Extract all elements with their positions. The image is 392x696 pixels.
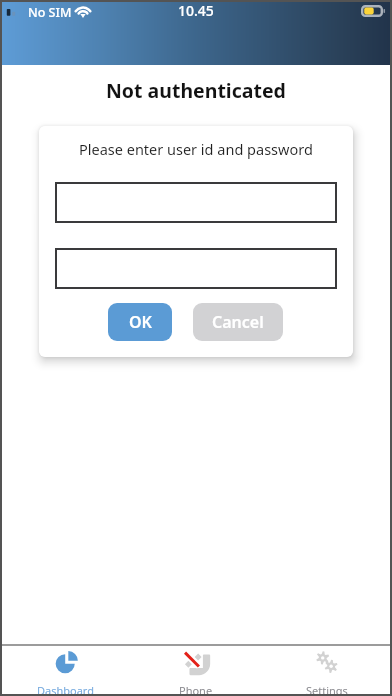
button[interactable]: Cancel <box>193 303 283 341</box>
staticText: OK <box>129 311 152 333</box>
staticText: Cancel <box>212 311 264 333</box>
other: Settings <box>316 652 337 673</box>
staticText: No SIM <box>28 4 72 21</box>
staticText: Dashboard <box>37 683 94 696</box>
staticText: Please enter user id and password <box>79 139 313 159</box>
staticText: Phone <box>179 683 213 696</box>
staticText: 10.45 <box>178 1 214 20</box>
button[interactable] <box>55 248 337 289</box>
button[interactable]: Phone <box>130 646 261 696</box>
button[interactable] <box>55 182 337 223</box>
button[interactable]: Dashboard <box>0 646 130 696</box>
button[interactable]: Settings <box>261 646 392 696</box>
button[interactable]: OK <box>108 303 172 341</box>
staticText: Settings <box>306 683 348 696</box>
staticText: Not authenticated <box>106 77 286 104</box>
other: Phone <box>186 651 212 677</box>
other: Dashboard <box>56 651 79 674</box>
